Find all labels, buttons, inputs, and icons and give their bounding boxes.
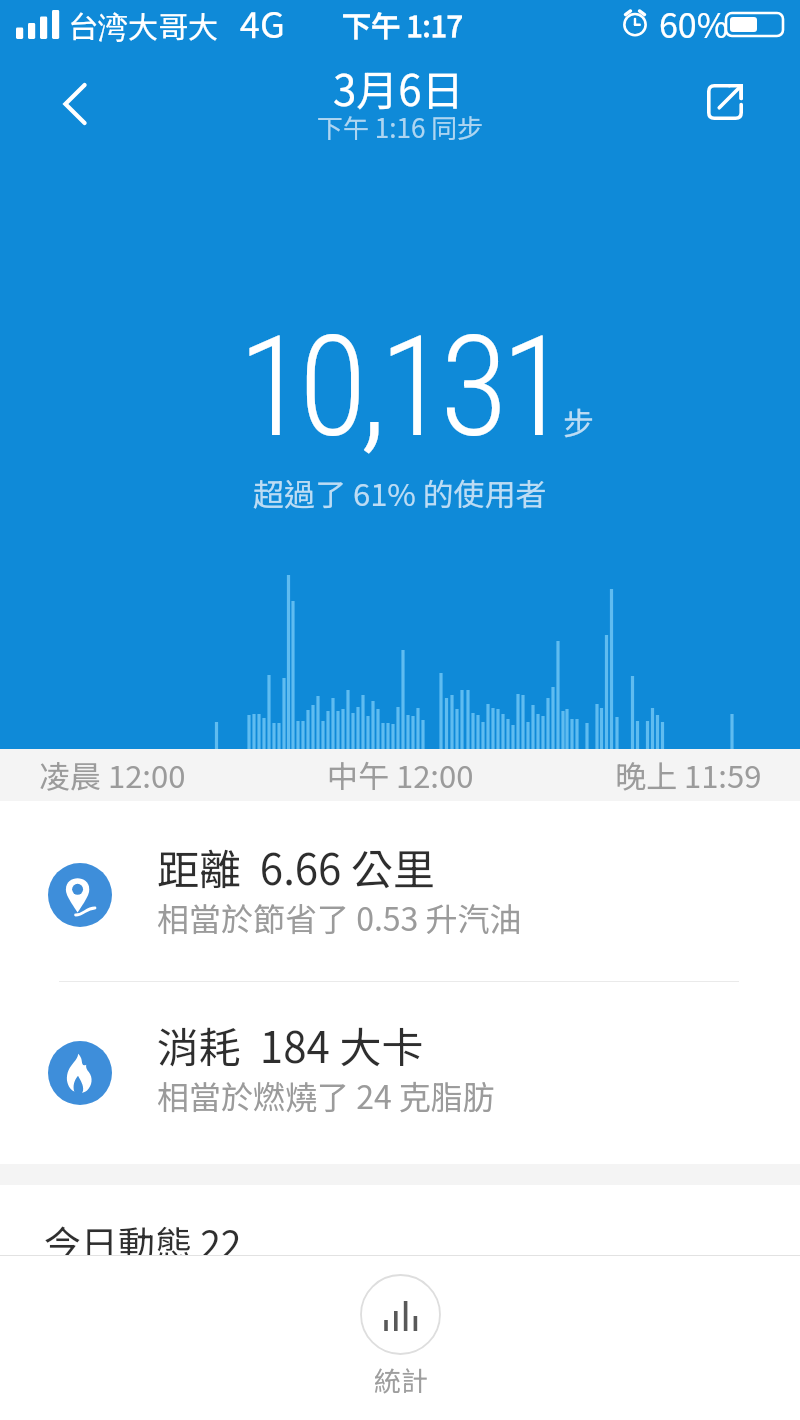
button[interactable]: 消耗 184 大卡 [0,982,800,1161]
staticText: 晚上 11:59 [615,752,762,797]
staticText: 消耗 184 大卡 [157,1014,424,1075]
staticText: 中午 12:00 [327,752,474,797]
staticText: 台湾大哥大 [68,3,218,47]
staticText: 相當於燃燒了 24 克脂肪 [157,1072,495,1118]
staticText: 超過了 61% 的使用者 [253,470,547,515]
button[interactable]: 統計 [360,1274,441,1399]
staticText: 下午 1:17 [342,3,463,45]
staticText: 相當於節省了 0.53 升汽油 [157,894,522,940]
button[interactable]: 距離 6.66 公里 [0,803,800,982]
staticText: 凌晨 12:00 [39,752,186,797]
staticText: 步 [563,399,594,444]
staticText: 10,131 [238,305,562,469]
button[interactable]: Back [40,74,110,134]
staticText: 統計 [374,1360,428,1399]
button[interactable]: Share [690,72,760,132]
staticText: 3月6日 [333,57,464,118]
staticText: 距離 6.66 公里 [157,836,435,897]
staticText: 下午 1:16 同步 [317,108,484,146]
staticText: 4G [240,0,285,48]
staticText: 今日動態 22 [44,1215,242,1269]
staticText: 60% [659,0,729,48]
